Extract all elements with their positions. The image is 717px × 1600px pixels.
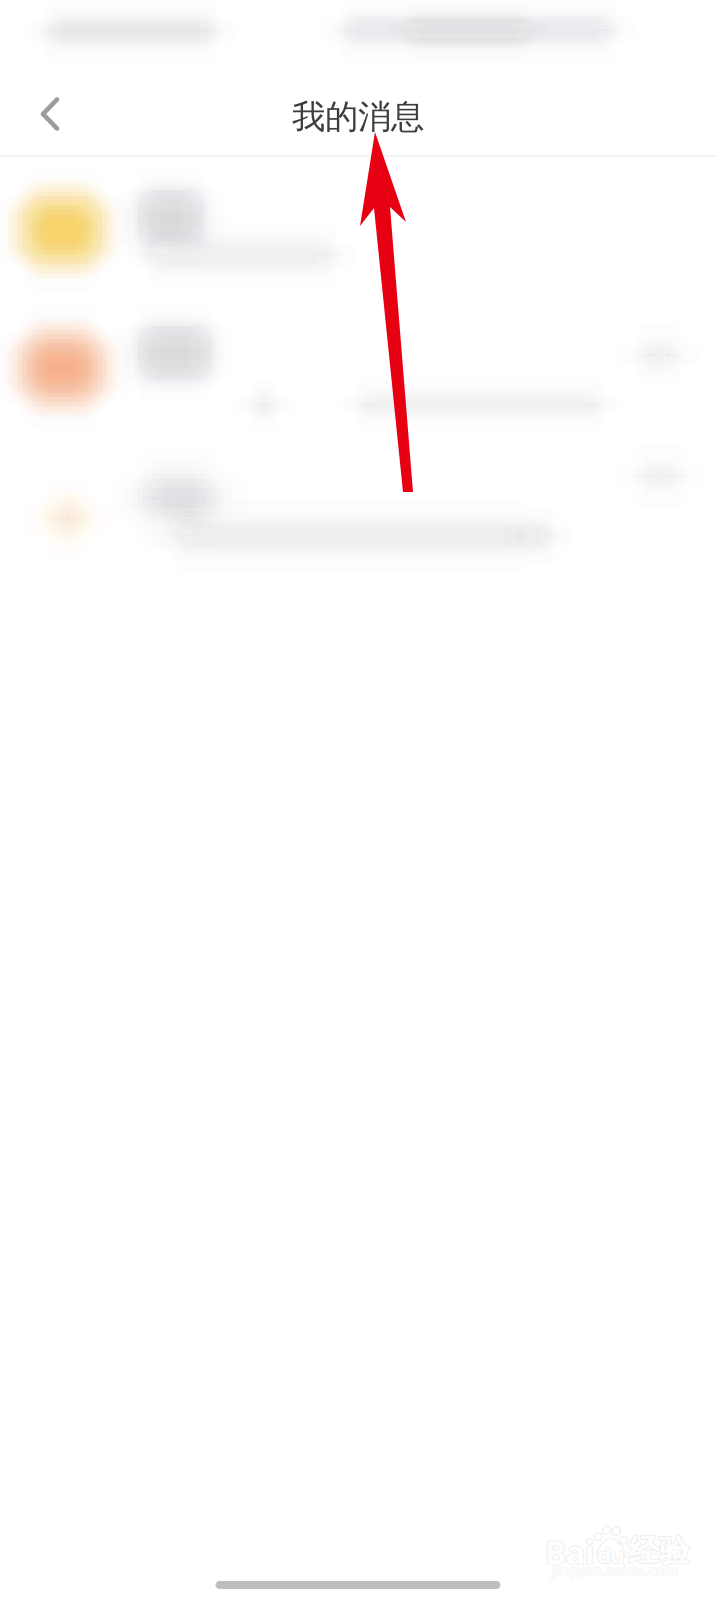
staticText: jingyan.baidu.com — [552, 1560, 679, 1579]
staticText: Bai — [545, 1530, 595, 1572]
staticText: Bai — [545, 1532, 595, 1574]
staticText: jingyan.baidu.com — [551, 1561, 678, 1580]
staticText: du — [597, 1541, 624, 1569]
staticText: Bai — [544, 1531, 594, 1573]
staticText: 经验 — [628, 1533, 690, 1571]
staticText: jingyan.baidu.com — [551, 1560, 678, 1580]
button[interactable]: Back — [7, 71, 93, 157]
staticText: Bai — [544, 1531, 594, 1574]
staticText: 经验 — [629, 1531, 691, 1569]
staticText: 经验 — [628, 1532, 690, 1570]
staticText: jingyan.baidu.com — [552, 1560, 679, 1580]
staticText: 我的消息 — [292, 96, 424, 137]
staticText: Bai — [545, 1531, 595, 1573]
staticText: du — [598, 1541, 625, 1570]
staticText: du — [597, 1542, 624, 1570]
staticText: du — [598, 1541, 625, 1569]
staticText: jingyan.baidu.com — [551, 1560, 678, 1580]
staticText: jingyan.baidu.com — [552, 1561, 679, 1580]
staticText: du — [597, 1540, 624, 1568]
staticText: 经验 — [627, 1533, 689, 1570]
staticText: 经验 — [629, 1532, 691, 1570]
staticText: Bai — [546, 1531, 596, 1573]
staticText: du — [597, 1541, 624, 1569]
staticText: du — [598, 1540, 625, 1568]
staticText: 经验 — [627, 1531, 689, 1569]
staticText: du — [597, 1540, 624, 1568]
staticText: Bai — [546, 1530, 596, 1573]
staticText: 经验 — [629, 1533, 691, 1570]
staticText: 经验 — [627, 1532, 689, 1570]
staticText: jingyan.baidu.com — [551, 1561, 678, 1580]
staticText: Bai — [544, 1530, 594, 1573]
staticText: Bai — [546, 1531, 596, 1574]
staticText: 经验 — [628, 1531, 690, 1569]
staticText: du — [597, 1541, 624, 1570]
staticText: jingyan.baidu.com — [551, 1560, 678, 1579]
staticText: jingyan.baidu.com — [551, 1560, 678, 1579]
